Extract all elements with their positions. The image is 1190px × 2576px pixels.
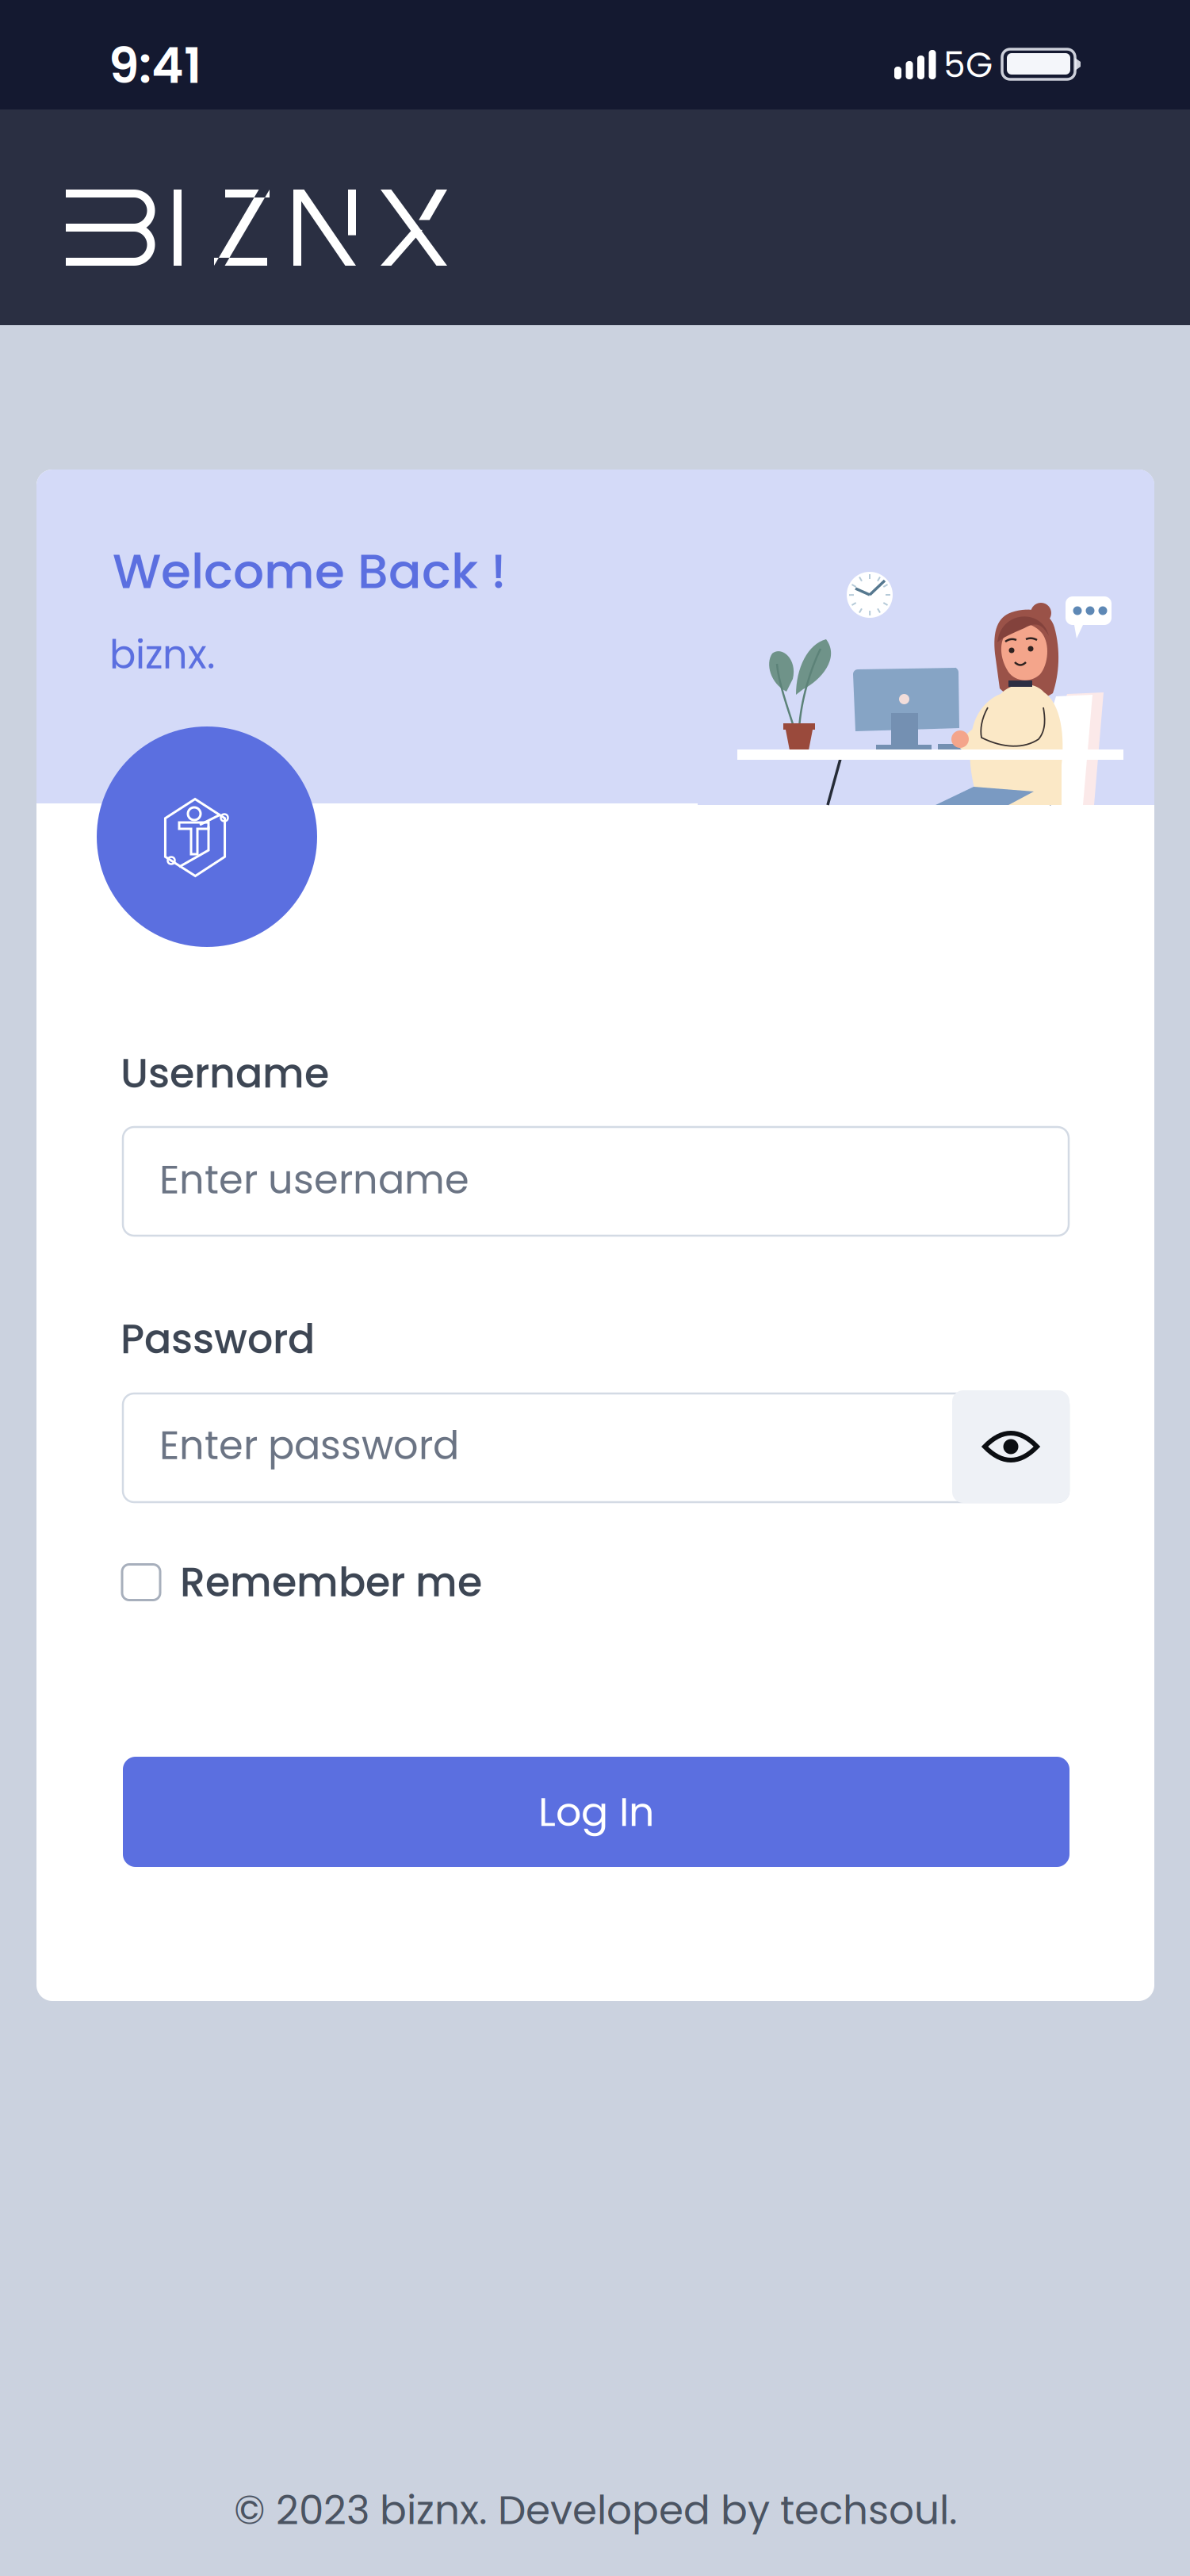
staticText: 5G: [943, 40, 993, 89]
staticText: Username: [121, 1045, 329, 1102]
staticText: biznx.: [109, 627, 215, 682]
staticText: Log In: [538, 1784, 654, 1840]
button[interactable]: Log In: [123, 1757, 1069, 1867]
staticText: Welcome Back !: [113, 537, 507, 605]
staticText: Enter password: [159, 1418, 459, 1473]
button[interactable]: Show password: [952, 1390, 1069, 1503]
staticText: Enter username: [159, 1152, 469, 1207]
staticText: Password: [121, 1311, 315, 1367]
staticText: Remember me: [180, 1554, 482, 1610]
staticText: 9:41: [109, 32, 201, 100]
staticText: © 2023 biznx. Developed by techsoul.: [234, 2482, 958, 2538]
button[interactable]: Remember me: [122, 1557, 534, 1608]
